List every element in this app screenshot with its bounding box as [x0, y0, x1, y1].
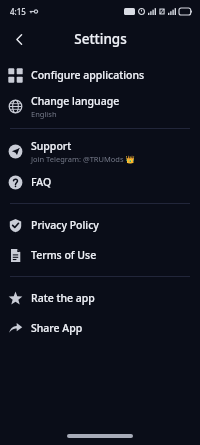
- button[interactable]: Support: [0, 135, 200, 167]
- staticText: FAQ: [31, 175, 52, 189]
- button[interactable]: Terms of Use: [0, 240, 200, 270]
- staticText: Join Telegram: @TRUMods 👑: [31, 154, 135, 164]
- staticText: 4:15: [10, 6, 26, 17]
- staticText: Change language: [31, 94, 120, 108]
- staticText: Privacy Policy: [31, 218, 99, 232]
- staticText: Share App: [31, 321, 83, 335]
- button[interactable]: Back: [4, 24, 34, 54]
- staticText: Settings: [74, 30, 127, 48]
- staticText: Configure applications: [31, 68, 145, 82]
- staticText: English: [31, 109, 57, 119]
- button[interactable]: Share App: [0, 313, 200, 343]
- staticText: Terms of Use: [31, 248, 97, 262]
- button[interactable]: Privacy Policy: [0, 210, 200, 240]
- button[interactable]: Configure applications: [0, 60, 200, 90]
- button[interactable]: Rate the app: [0, 283, 200, 313]
- staticText: Support: [31, 139, 72, 153]
- staticText: Rate the app: [31, 291, 95, 305]
- button[interactable]: FAQ: [0, 167, 200, 197]
- button[interactable]: Change language: [0, 90, 200, 122]
